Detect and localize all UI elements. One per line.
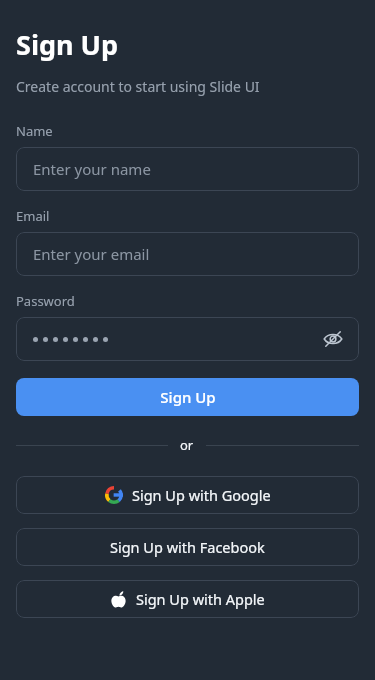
staticText: Sign Up with Apple: [136, 589, 265, 609]
button[interactable]: Show password: [16, 317, 359, 361]
staticText: Name: [16, 122, 53, 140]
button[interactable]: Show password: [319, 325, 347, 353]
staticText: or: [180, 436, 194, 454]
staticText: Sign Up: [16, 26, 119, 63]
button[interactable]: Sign Up: [16, 378, 359, 416]
button[interactable]: Sign Up with Google: [16, 476, 359, 514]
staticText: Enter your name: [33, 159, 151, 179]
staticText: Enter your email: [33, 244, 150, 264]
button[interactable]: Enter your email: [16, 232, 359, 276]
button[interactable]: Sign Up with Facebook: [16, 528, 359, 566]
staticText: Sign Up with Google: [132, 485, 271, 505]
staticText: Sign Up with Facebook: [110, 537, 265, 557]
staticText: Password: [16, 292, 75, 310]
staticText: Email: [16, 207, 50, 225]
staticText: Sign Up: [160, 387, 216, 407]
button[interactable]: Enter your name: [16, 147, 359, 191]
button[interactable]: Sign Up with Apple: [16, 580, 359, 618]
staticText: Create account to start using Slide UI: [16, 77, 260, 96]
